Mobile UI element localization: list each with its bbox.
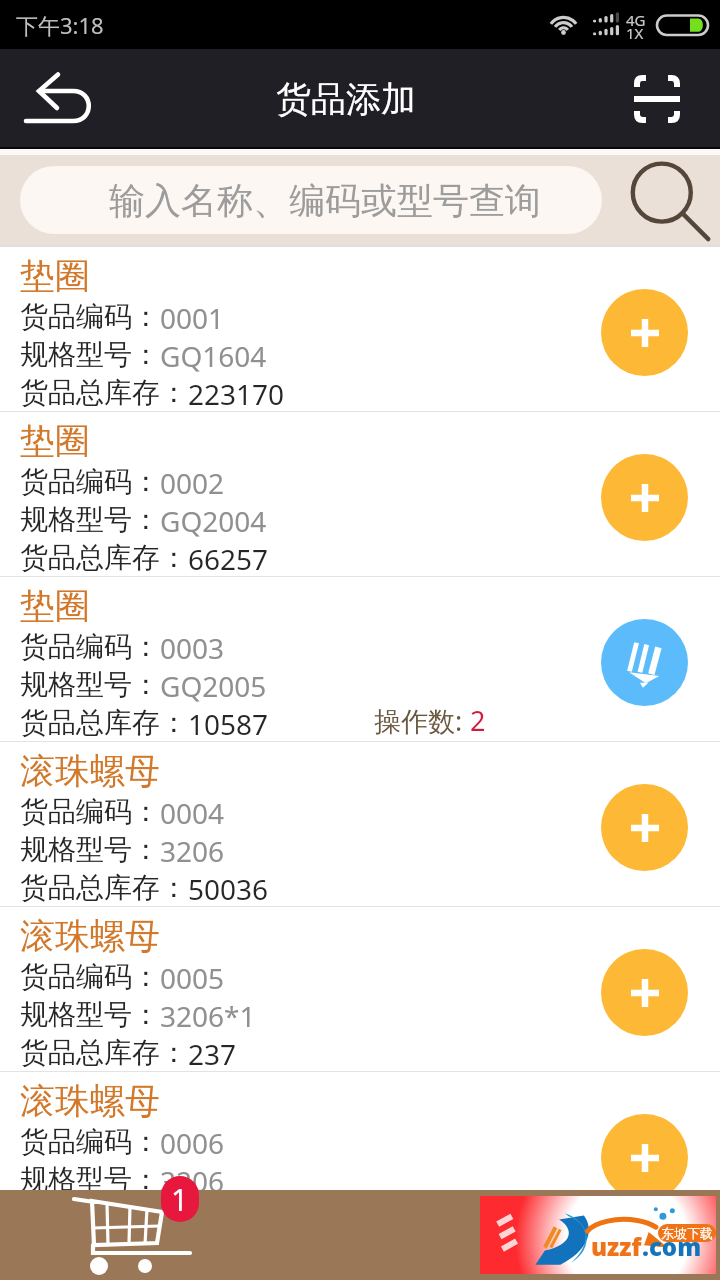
staticText: 货品添加	[276, 77, 416, 121]
staticText: 垫圈	[20, 419, 90, 463]
staticText: 223170	[188, 375, 285, 411]
staticText: GQ1604	[160, 337, 267, 375]
staticText: 输入名称、编码或型号查询	[109, 178, 541, 223]
staticText: 10587	[188, 705, 269, 741]
staticText: 66257	[188, 540, 269, 576]
staticText: 滚珠螺母	[20, 1079, 160, 1123]
staticText: 0006	[160, 1124, 225, 1162]
staticText: 2	[470, 702, 486, 739]
button[interactable]: Add	[601, 454, 688, 541]
button[interactable]: Search	[602, 155, 720, 245]
staticText: 3206	[160, 832, 225, 870]
staticText: 规格型号：	[20, 1162, 160, 1190]
button[interactable]: Add	[601, 784, 688, 871]
staticText: 4G	[626, 10, 646, 30]
staticText: 滚珠螺母	[20, 749, 160, 793]
staticText: 货品总库存：	[20, 375, 188, 410]
staticText: 50036	[188, 870, 269, 906]
staticText: 3206*1	[160, 997, 256, 1035]
staticText: 0004	[160, 794, 225, 832]
staticText: .com	[642, 1230, 702, 1263]
staticText: 237	[188, 1035, 237, 1071]
staticText: 滚珠螺母	[20, 914, 160, 958]
staticText: 货品编码：	[20, 1124, 160, 1159]
button[interactable]: 垫圈	[0, 577, 720, 742]
staticText: 货品编码：	[20, 959, 160, 994]
staticText: uzzf	[591, 1230, 642, 1263]
staticText: 货品总库存：	[20, 1035, 188, 1070]
staticText: 0005	[160, 959, 225, 997]
staticText: GQ2005	[160, 667, 267, 705]
staticText: 货品编码：	[20, 794, 160, 829]
staticText: 垫圈	[20, 584, 90, 628]
staticText: 操作数:	[374, 702, 470, 739]
button[interactable]: Cart	[60, 1190, 200, 1280]
staticText: GQ2004	[160, 502, 267, 540]
staticText: 0002	[160, 464, 225, 502]
button[interactable]: 滚珠螺母	[0, 742, 720, 907]
button[interactable]: 输入名称、编码或型号查询	[20, 166, 602, 234]
staticText: 规格型号：	[20, 502, 160, 537]
staticText: 0001	[160, 299, 225, 337]
staticText: 3206	[160, 1162, 225, 1190]
button[interactable]: Add	[601, 1114, 688, 1190]
staticText: 货品编码：	[20, 299, 160, 334]
button[interactable]: Add	[601, 289, 688, 376]
button[interactable]: 垫圈	[0, 247, 720, 412]
button[interactable]: 垫圈	[0, 412, 720, 577]
button[interactable]: 滚珠螺母	[0, 907, 720, 1072]
staticText: 规格型号：	[20, 832, 160, 867]
staticText: 货品总库存：	[20, 705, 188, 740]
staticText: 规格型号：	[20, 997, 160, 1032]
staticText: 东坡下载	[661, 1225, 713, 1241]
staticText: 规格型号：	[20, 337, 160, 372]
button[interactable]: Edit	[601, 619, 688, 706]
button[interactable]: Scan barcode	[600, 49, 720, 149]
staticText: 1	[171, 1179, 189, 1220]
staticText: 0003	[160, 629, 225, 667]
staticText: 规格型号：	[20, 667, 160, 702]
button[interactable]: Back	[0, 49, 120, 149]
button[interactable]: 滚珠螺母	[0, 1072, 720, 1190]
staticText: 货品总库存：	[20, 540, 188, 575]
button[interactable]: Add	[601, 949, 688, 1036]
staticText: 垫圈	[20, 254, 90, 298]
staticText: 货品编码：	[20, 464, 160, 499]
staticText: 下午3:18	[16, 10, 104, 40]
staticText: 货品编码：	[20, 629, 160, 664]
staticText: 货品总库存：	[20, 870, 188, 905]
staticText: 1X	[626, 23, 644, 43]
